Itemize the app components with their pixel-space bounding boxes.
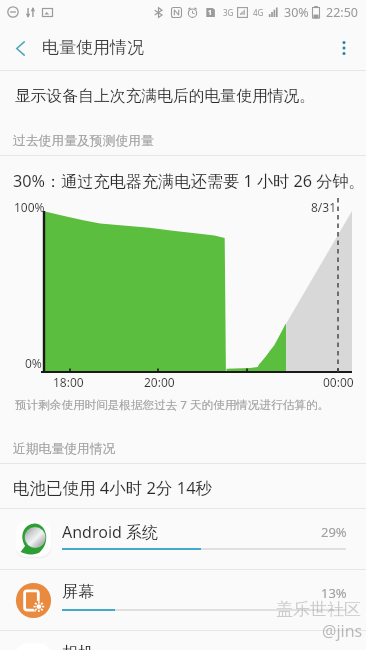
staticText: 3G [223,7,234,18]
staticText: 13% [321,584,347,602]
staticText: 29% [321,523,347,541]
staticText: 20:00 [144,374,175,390]
staticText: Android 系统 [62,521,159,543]
staticText: 电量使用情况 [42,37,144,58]
staticText: 30% [284,4,309,21]
staticText: 电池已使用 4小时 2分 14秒 [13,476,213,499]
staticText: 100% [14,199,45,215]
staticText: @jins [322,620,363,642]
staticText: 4G [253,7,264,18]
staticText: 相机 [62,643,94,650]
staticText: 1 [208,8,213,18]
staticText: 过去使用量及预测使用量 [13,133,154,149]
button[interactable]: Back [0,26,42,70]
button[interactable]: More options [322,26,366,70]
staticText: 0% [25,355,42,371]
staticText: 22:50 [326,4,358,21]
button[interactable]: 相机 [0,631,366,650]
staticText: 18:00 [53,374,84,390]
button[interactable]: 屏幕 [0,570,366,631]
staticText: 8/31 [311,199,337,215]
staticText: 30%：通过充电器充满电还需要 1 小时 26 分钟。 [13,170,365,192]
staticText: 屏幕 [62,582,94,602]
staticText: 显示设备自上次充满电后的电量使用情况。 [15,86,316,106]
staticText: 盖乐世社区 [276,599,361,620]
button[interactable]: Android 系统 [0,509,366,570]
staticText: 预计剩余使用时间是根据您过去 7 天的使用情况进行估算的。 [15,397,330,413]
staticText: 00:00 [323,374,354,390]
staticText: 近期电量使用情况 [13,441,116,457]
